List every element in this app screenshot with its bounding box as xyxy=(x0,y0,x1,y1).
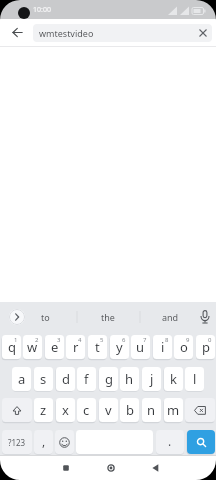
staticText: wmtestvideo xyxy=(39,27,94,39)
button[interactable]: j xyxy=(142,367,161,391)
staticText: i xyxy=(161,338,165,356)
staticText: 0 xyxy=(208,336,212,344)
staticText: and xyxy=(162,311,179,323)
staticText: k xyxy=(170,370,177,388)
button[interactable]: p xyxy=(196,335,215,359)
staticText: c xyxy=(83,401,90,419)
button[interactable] xyxy=(2,398,32,422)
staticText: y xyxy=(116,338,123,356)
button[interactable]: wmtestvideo xyxy=(33,24,212,42)
button[interactable]: o xyxy=(174,335,193,359)
button[interactable]: h xyxy=(120,367,139,391)
button[interactable]: . xyxy=(156,430,184,454)
staticText: v xyxy=(105,401,112,419)
staticText: f xyxy=(84,370,89,388)
button[interactable]: r xyxy=(66,335,85,359)
button[interactable] xyxy=(55,430,74,454)
button[interactable] xyxy=(55,455,77,480)
staticText: , xyxy=(42,433,46,449)
button[interactable]: b xyxy=(120,398,139,422)
staticText: d xyxy=(62,370,70,388)
staticText: ?123 xyxy=(8,437,26,448)
staticText: b xyxy=(126,401,134,419)
button[interactable]: , xyxy=(34,430,53,454)
button[interactable]: g xyxy=(99,367,118,391)
staticText: 7 xyxy=(143,336,147,344)
button[interactable]: t xyxy=(88,335,107,359)
button[interactable]: a xyxy=(12,367,31,391)
button[interactable]: u xyxy=(131,335,150,359)
staticText: q xyxy=(8,338,16,356)
staticText: n xyxy=(147,401,156,419)
button[interactable]: n xyxy=(142,398,161,422)
button[interactable] xyxy=(185,398,215,422)
staticText: p xyxy=(202,338,210,356)
button[interactable]: and xyxy=(148,302,192,332)
button[interactable] xyxy=(100,455,122,480)
button[interactable] xyxy=(187,430,215,454)
staticText: l xyxy=(193,370,197,388)
staticText: h xyxy=(125,370,134,388)
button[interactable] xyxy=(194,24,212,42)
staticText: 1 xyxy=(14,336,18,344)
button[interactable]: c xyxy=(77,398,96,422)
staticText: . xyxy=(168,433,172,449)
button[interactable]: y xyxy=(110,335,129,359)
button[interactable]: w xyxy=(23,335,42,359)
staticText: 2 xyxy=(35,336,39,344)
staticText: r xyxy=(73,338,79,356)
button[interactable]: e xyxy=(45,335,64,359)
button[interactable]: v xyxy=(99,398,118,422)
staticText: z xyxy=(40,401,47,419)
staticText: w xyxy=(27,338,38,356)
button[interactable]: l xyxy=(185,367,204,391)
staticText: 3 xyxy=(57,336,61,344)
button[interactable]: m xyxy=(164,398,183,422)
staticText: 4 xyxy=(78,336,82,344)
button[interactable]: i xyxy=(153,335,172,359)
staticText: t xyxy=(95,338,100,356)
button[interactable]: to xyxy=(23,302,67,332)
staticText: x xyxy=(62,401,69,419)
staticText: m xyxy=(167,401,180,419)
button[interactable]: z xyxy=(34,398,53,422)
button[interactable]: the xyxy=(86,302,130,332)
staticText: 10:00 xyxy=(33,5,51,15)
button[interactable] xyxy=(6,21,28,43)
staticText: 5 xyxy=(100,336,104,344)
staticText: g xyxy=(105,370,113,388)
button[interactable]: f xyxy=(77,367,96,391)
staticText: o xyxy=(180,338,188,356)
button[interactable] xyxy=(144,455,166,480)
staticText: 6 xyxy=(122,336,126,344)
staticText: 8 xyxy=(165,336,169,344)
staticText: 9 xyxy=(186,336,190,344)
staticText: s xyxy=(40,370,47,388)
staticText: u xyxy=(136,338,145,356)
staticText: a xyxy=(18,370,26,388)
button[interactable]: ?123 xyxy=(2,430,32,454)
button[interactable]: q xyxy=(2,335,21,359)
button[interactable]: k xyxy=(164,367,183,391)
button[interactable] xyxy=(9,309,25,325)
staticText: to xyxy=(41,311,50,323)
staticText: e xyxy=(51,338,59,356)
button[interactable]: x xyxy=(56,398,75,422)
staticText: j xyxy=(150,370,154,388)
button[interactable]: s xyxy=(34,367,53,391)
staticText: the xyxy=(101,311,115,323)
button[interactable]: d xyxy=(56,367,75,391)
button[interactable] xyxy=(197,309,213,325)
